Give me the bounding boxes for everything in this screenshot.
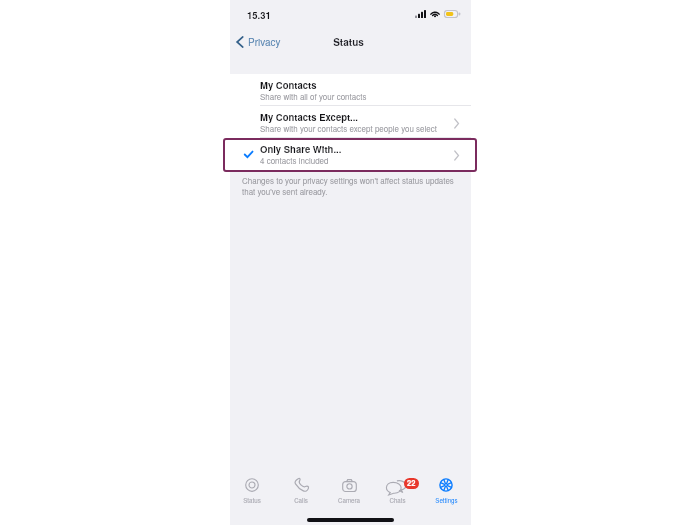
staticText: Camera [338, 496, 360, 505]
staticText: Status [228, 35, 469, 49]
button[interactable]: Camera [327, 477, 371, 509]
staticText: Status [243, 496, 261, 505]
button[interactable]: My Contacts [230, 74, 471, 106]
other: Status [245, 478, 259, 492]
staticText: Share with your contacts except people y… [260, 123, 437, 134]
button[interactable]: Only Share With... [230, 138, 471, 170]
button[interactable]: Privacy [234, 33, 283, 50]
other: Settings [439, 478, 453, 492]
other: Camera [342, 479, 357, 492]
button[interactable]: Settings [424, 477, 468, 509]
button[interactable]: Calls [279, 477, 323, 509]
button[interactable]: Status [230, 477, 274, 509]
staticText: Chats [389, 496, 406, 505]
staticText: 22 [407, 478, 416, 489]
staticText: Privacy [248, 35, 281, 49]
staticText: 4 contacts included [260, 155, 329, 166]
other: Calls [294, 478, 309, 492]
staticText: Share with all of your contacts [260, 91, 367, 102]
button[interactable]: 22 [375, 477, 419, 509]
staticText: My Contacts Except... [260, 110, 359, 124]
staticText: Only Share With... [260, 142, 342, 156]
staticText: Calls [294, 496, 308, 505]
staticText: Changes to your privacy settings won't a… [242, 175, 464, 197]
button[interactable]: My Contacts Except... [230, 106, 471, 138]
staticText: Settings [435, 496, 458, 505]
staticText: 15.31 [247, 8, 271, 22]
staticText: My Contacts [260, 78, 317, 92]
